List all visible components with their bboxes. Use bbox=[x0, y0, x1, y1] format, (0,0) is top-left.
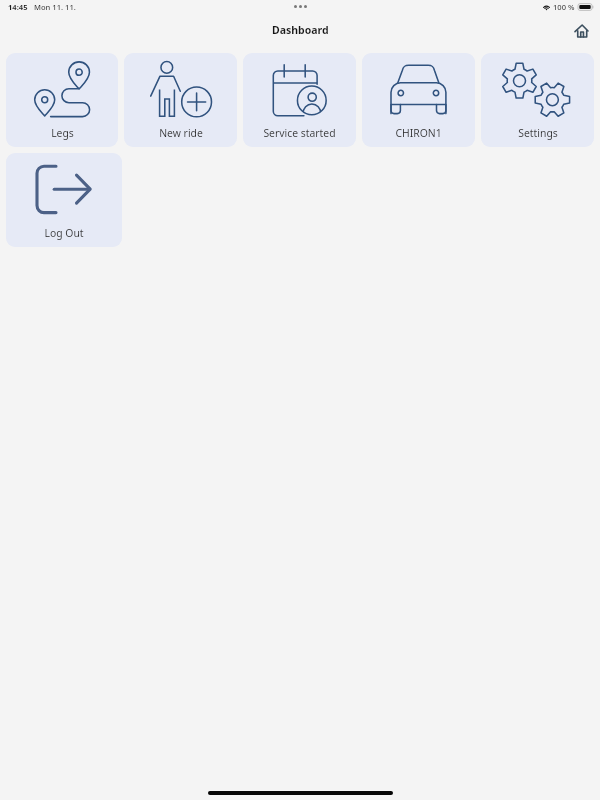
staticText: Mon 11. 11. bbox=[34, 2, 76, 12]
button[interactable]: Log Out bbox=[6, 153, 122, 247]
button[interactable]: Legs bbox=[6, 53, 118, 147]
button[interactable]: Service started bbox=[243, 53, 356, 147]
button[interactable]: New ride bbox=[124, 53, 237, 147]
staticText: Dashboard bbox=[272, 23, 329, 37]
button[interactable]: CHIRON1 bbox=[362, 53, 475, 147]
staticText: Legs bbox=[51, 126, 74, 140]
staticText: Service started bbox=[263, 126, 336, 140]
staticText: 100 % bbox=[553, 2, 575, 12]
button[interactable]: Settings bbox=[481, 53, 594, 147]
staticText: Settings bbox=[518, 126, 558, 140]
staticText: New ride bbox=[159, 126, 203, 140]
staticText: CHIRON1 bbox=[395, 126, 442, 140]
staticText: Log Out bbox=[44, 226, 84, 240]
staticText: 14:45 bbox=[8, 2, 28, 12]
button[interactable]: Home bbox=[569, 19, 593, 43]
